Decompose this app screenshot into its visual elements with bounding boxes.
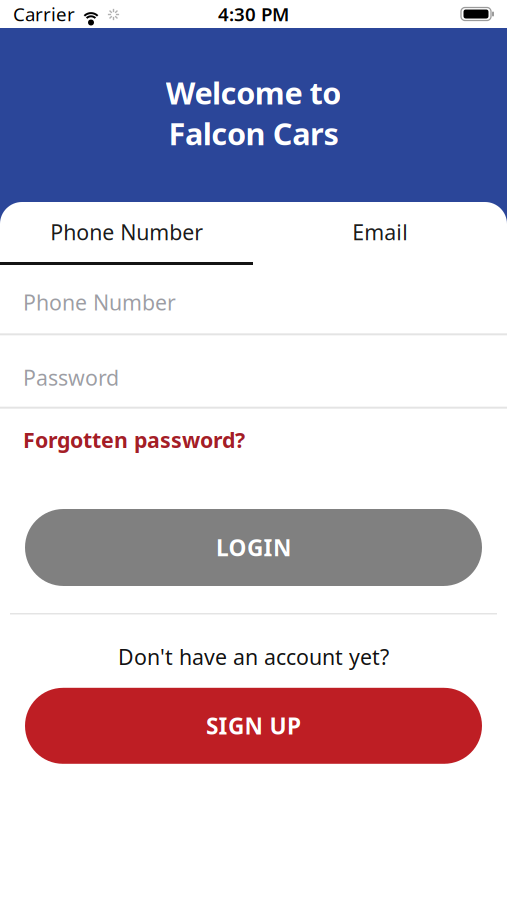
staticText: Phone Number — [50, 218, 203, 246]
staticText: Email — [352, 218, 408, 246]
staticText: Welcome to — [166, 72, 341, 113]
button[interactable]: Phone Number — [0, 202, 253, 262]
button[interactable]: SIGN UP — [0, 688, 507, 764]
staticText: Falcon Cars — [168, 113, 338, 154]
button[interactable]: Phone Number — [0, 288, 507, 316]
staticText: LOGIN — [216, 532, 291, 562]
staticText: Don't have an account yet? — [118, 642, 389, 671]
staticText: Password — [23, 363, 119, 392]
staticText: SIGN UP — [206, 711, 301, 741]
staticText: 4:30 PM — [218, 2, 289, 26]
button[interactable]: Password — [0, 363, 507, 392]
button[interactable]: Forgotten password? — [0, 426, 507, 454]
staticText: Forgotten password? — [23, 426, 245, 454]
button[interactable]: Email — [253, 202, 507, 262]
staticText: Phone Number — [23, 288, 176, 316]
button[interactable]: LOGIN — [0, 509, 507, 586]
staticText: Carrier — [13, 2, 75, 26]
